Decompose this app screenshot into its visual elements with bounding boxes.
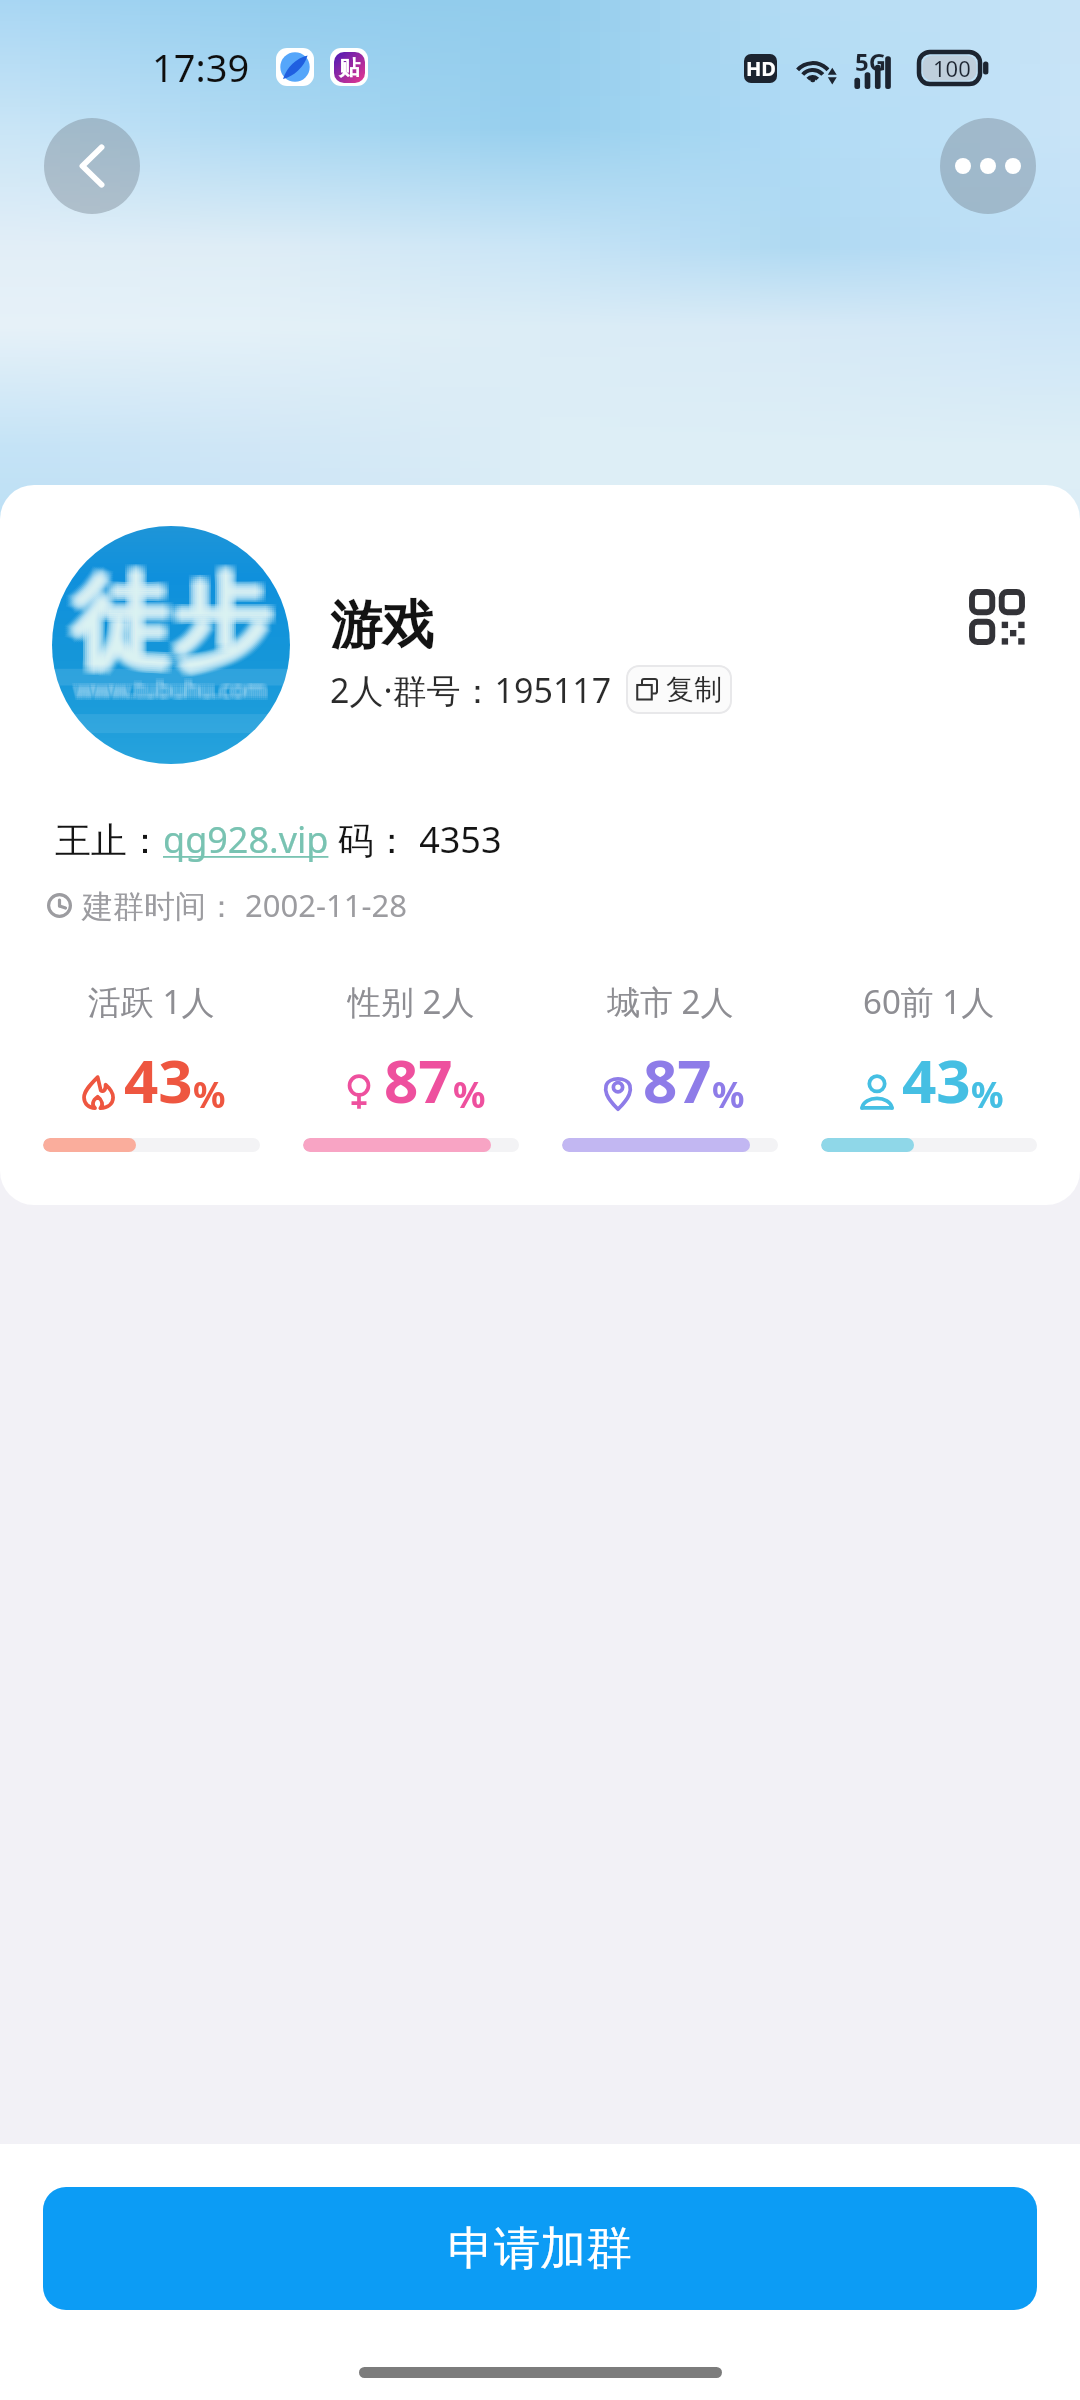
staticText: 100 xyxy=(933,53,971,83)
staticText: 徒步 xyxy=(68,557,268,683)
staticText: 60前 1人 xyxy=(863,979,995,1024)
staticText: 徒步 xyxy=(68,561,268,687)
staticText: 徒步 xyxy=(74,557,274,683)
staticText: 徒步 xyxy=(72,561,272,687)
staticText: www.tubuhu.com xyxy=(76,673,268,704)
staticText: 徒步 xyxy=(66,563,266,689)
staticText: 建群时间： 2002-11-28 xyxy=(82,884,407,926)
staticText: 徒步 xyxy=(68,563,268,689)
staticText: 徒步 xyxy=(74,565,274,691)
staticText: 申请加群 xyxy=(448,2220,632,2278)
staticText: 徒步 xyxy=(76,561,276,687)
staticText: 5G xyxy=(855,45,887,78)
staticText: 徒步 xyxy=(70,561,270,687)
staticText: 17:39 xyxy=(152,41,250,93)
staticText: 复制 xyxy=(666,672,722,707)
staticText: % xyxy=(453,1070,486,1119)
staticText: 徒步 xyxy=(72,559,272,685)
staticText: 徒步 xyxy=(66,557,266,683)
staticText: 徒步 xyxy=(72,557,272,683)
staticText: 徒步 xyxy=(66,561,266,687)
button[interactable]: Back xyxy=(44,118,140,214)
staticText: 城市 2人 xyxy=(607,979,734,1024)
staticText: 徒步 xyxy=(70,555,270,681)
staticText: % xyxy=(971,1070,1004,1119)
staticText: 2人·群号：195117 xyxy=(330,667,612,713)
staticText: 徒步 xyxy=(74,561,274,687)
button[interactable]: More options xyxy=(940,118,1036,214)
staticText: 贴 xyxy=(339,55,360,81)
staticText: 徒步 xyxy=(76,565,276,691)
button[interactable]: 活跃 1人 xyxy=(43,979,260,1152)
staticText: 43 xyxy=(902,1039,971,1121)
button[interactable]: 城市 2人 xyxy=(562,979,778,1152)
staticText: 徒步 xyxy=(72,565,272,691)
button[interactable]: 性别 2人 xyxy=(303,979,519,1152)
staticText: 徒步 xyxy=(68,559,268,685)
staticText: % xyxy=(193,1070,226,1119)
staticText: www.tubuhu.com xyxy=(78,673,270,704)
staticText: www.tubuhu.com xyxy=(78,671,270,702)
staticText: 徒步 xyxy=(66,565,266,691)
staticText: www.tubuhu.com xyxy=(74,671,266,702)
staticText: 徒步 xyxy=(76,559,276,685)
staticText: 游戏 xyxy=(330,593,434,659)
staticText: www.tubuhu.com xyxy=(78,675,270,706)
staticText: 87 xyxy=(643,1039,712,1121)
staticText: www.tubuhu.com xyxy=(72,673,264,704)
staticText: 徒步 xyxy=(74,559,274,685)
staticText: % xyxy=(712,1070,745,1119)
button[interactable]: 申请加群 xyxy=(43,2187,1037,2310)
staticText: www.tubuhu.com xyxy=(72,675,264,706)
staticText: 徒步 xyxy=(74,563,274,689)
staticText: 徒步 xyxy=(74,555,274,681)
staticText: 王止：qg928.vip 码： 4353 xyxy=(55,815,502,864)
staticText: 活跃 1人 xyxy=(88,979,215,1024)
staticText: 徒步 xyxy=(72,555,272,681)
button[interactable]: 复制 xyxy=(626,665,732,714)
staticText: 徒步 xyxy=(66,555,266,681)
staticText: 徒步 xyxy=(70,559,270,685)
staticText: 徒步 xyxy=(70,565,270,691)
staticText: www.tubuhu.com xyxy=(76,675,268,706)
staticText: 徒步 xyxy=(66,559,266,685)
staticText: 87 xyxy=(384,1039,453,1121)
staticText: 徒步 xyxy=(70,563,270,689)
button[interactable]: 60前 1人 xyxy=(821,979,1037,1152)
staticText: HD xyxy=(746,55,776,82)
staticText: 徒步 xyxy=(68,565,268,691)
staticText: 徒步 xyxy=(68,555,268,681)
staticText: www.tubuhu.com xyxy=(76,671,268,702)
staticText: 徒步 xyxy=(70,557,270,683)
staticText: 徒步 xyxy=(76,557,276,683)
button[interactable]: QR code xyxy=(960,580,1034,654)
staticText: www.tubuhu.com xyxy=(74,673,266,704)
staticText: 43 xyxy=(124,1039,193,1121)
staticText: www.tubuhu.com xyxy=(72,671,264,702)
staticText: 徒步 xyxy=(72,563,272,689)
staticText: 性别 2人 xyxy=(348,979,475,1024)
staticText: www.tubuhu.com xyxy=(74,675,266,706)
staticText: 徒步 xyxy=(76,555,276,681)
staticText: 徒步 xyxy=(76,563,276,689)
